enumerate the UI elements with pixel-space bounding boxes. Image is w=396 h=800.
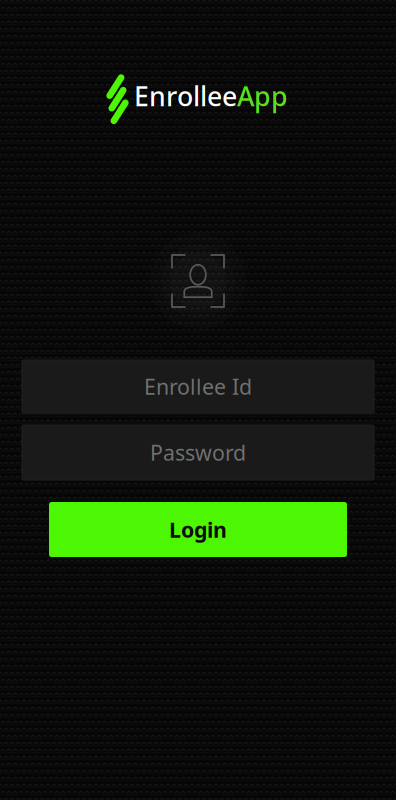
staticText: Enrollee Id — [144, 372, 252, 401]
staticText: Login — [169, 515, 227, 544]
staticText: Password — [150, 438, 246, 467]
button[interactable]: Login — [49, 502, 347, 557]
button[interactable]: Enrollee Id — [22, 360, 374, 413]
button[interactable]: Password — [22, 425, 374, 480]
staticText: Enrollee — [134, 78, 237, 114]
staticText: App — [237, 78, 288, 114]
